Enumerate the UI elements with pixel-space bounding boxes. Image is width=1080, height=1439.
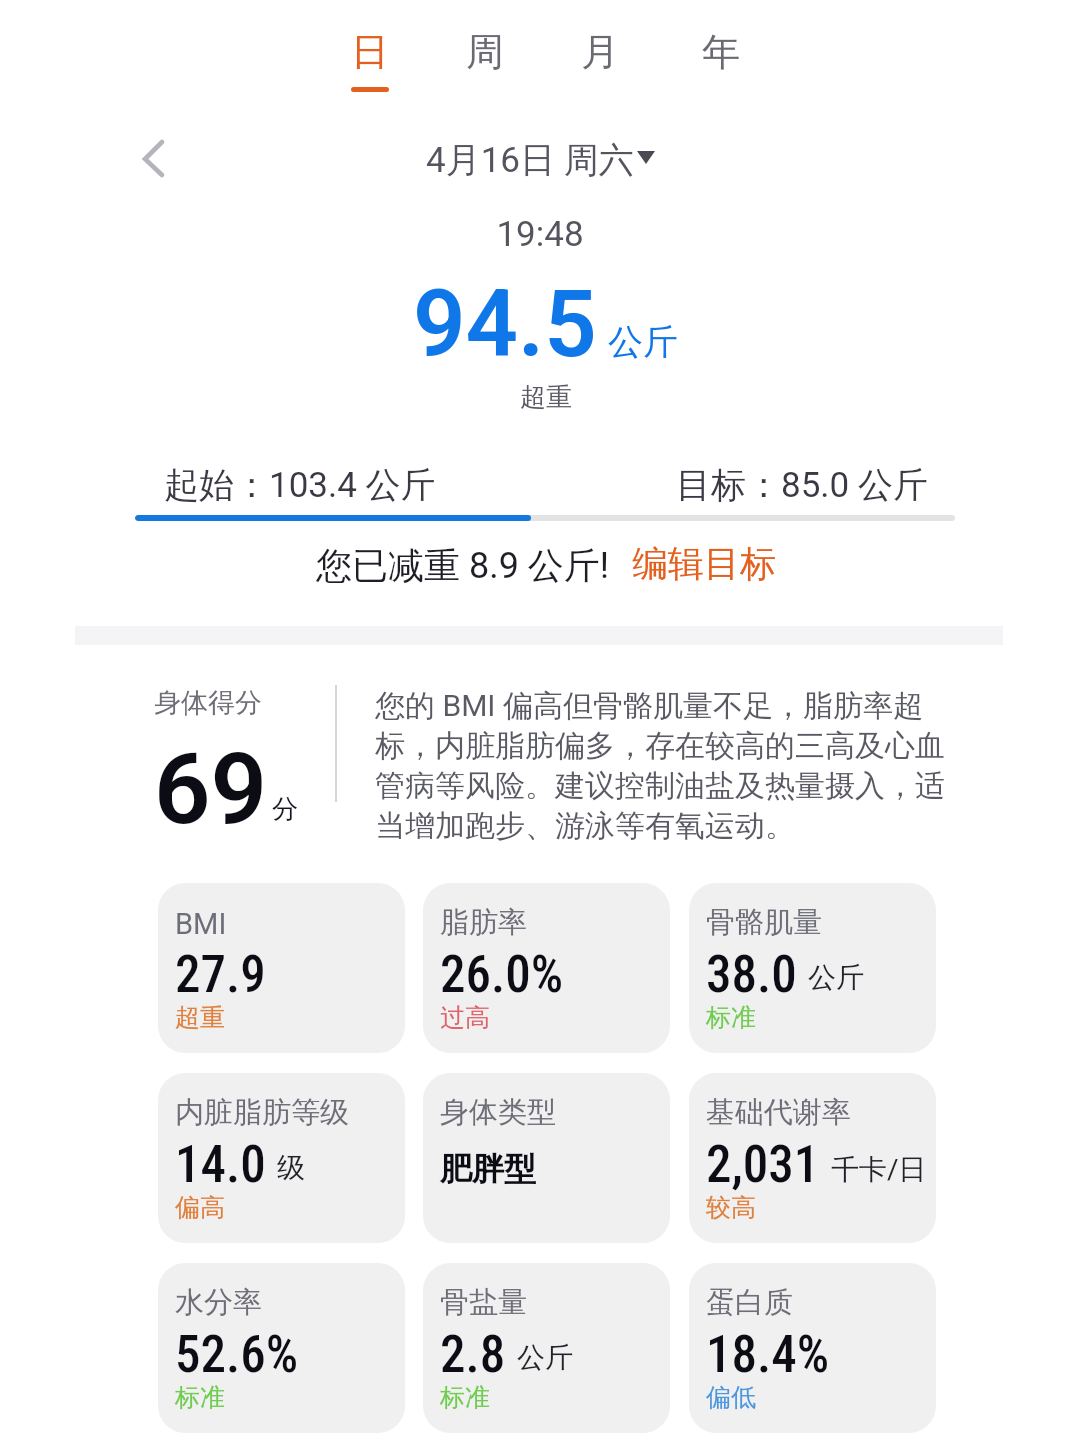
button[interactable]: 骨骼肌量 [689, 883, 936, 1053]
button[interactable]: Back [124, 130, 180, 186]
staticText: 标准 [440, 1382, 490, 1414]
staticText: 分 [272, 794, 298, 826]
staticText: 周 [466, 32, 504, 76]
staticText: 起始：103.4 公斤 [164, 462, 436, 508]
staticText: 目标：85.0 公斤 [676, 462, 928, 508]
staticText: 水分率 [175, 1285, 262, 1321]
staticText: 2.8 [440, 1331, 506, 1383]
staticText: 级 [277, 1152, 305, 1186]
button[interactable]: 年 [675, 32, 767, 116]
staticText: 日 [351, 32, 389, 76]
staticText: 脂肪率 [440, 905, 527, 941]
staticText: 蛋白质 [706, 1285, 793, 1321]
staticText: 27.9 [175, 951, 266, 1003]
staticText: 身体类型 [440, 1095, 556, 1131]
button[interactable]: 身体类型 [423, 1073, 670, 1243]
staticText: 骨骼肌量 [706, 905, 822, 941]
staticText: 18.4% [706, 1331, 830, 1383]
staticText: 肥胖型 [440, 1149, 536, 1191]
staticText: 编辑目标 [632, 543, 776, 587]
staticText: 千卡/日 [831, 1152, 927, 1188]
staticText: 14.0 [175, 1141, 266, 1193]
staticText: 偏低 [706, 1382, 756, 1414]
button[interactable]: BMI [158, 883, 405, 1053]
staticText: 公斤 [517, 1342, 573, 1376]
staticText: 偏高 [175, 1192, 225, 1224]
staticText: 94.5 [413, 272, 597, 378]
staticText: 26.0% [440, 951, 564, 1003]
button[interactable]: 日 [324, 32, 416, 116]
staticText: 身体得分 [154, 687, 262, 721]
staticText: 超重 [175, 1002, 225, 1034]
staticText: 52.6% [175, 1331, 299, 1383]
staticText: 月 [581, 32, 619, 76]
staticText: 标准 [706, 1002, 756, 1034]
staticText: 公斤 [608, 321, 678, 365]
staticText: 您已减重 8.9 公斤! [316, 543, 610, 589]
staticText: 69 [154, 731, 268, 847]
button[interactable]: 4月16日 周六 [426, 137, 655, 183]
button[interactable]: 月 [554, 32, 646, 116]
button[interactable]: 基础代谢率 [689, 1073, 936, 1243]
button[interactable]: 骨盐量 [423, 1263, 670, 1433]
button[interactable]: 蛋白质 [689, 1263, 936, 1433]
button[interactable]: 水分率 [158, 1263, 405, 1433]
staticText: 年 [702, 32, 740, 76]
staticText: 标准 [175, 1382, 225, 1414]
staticText: 内脏脂肪等级 [175, 1095, 349, 1131]
staticText: 38.0 [706, 951, 797, 1003]
button[interactable]: 内脏脂肪等级 [158, 1073, 405, 1243]
staticText: 19:48 [0, 211, 1080, 255]
button[interactable]: 脂肪率 [423, 883, 670, 1053]
staticText: 2,031 [706, 1141, 820, 1193]
button[interactable]: 编辑目标 [632, 543, 776, 587]
staticText: 过高 [440, 1002, 490, 1034]
staticText: BMI [175, 905, 227, 941]
staticText: 较高 [706, 1192, 756, 1224]
staticText: 骨盐量 [440, 1285, 527, 1321]
staticText: 超重 [6, 381, 1080, 415]
staticText: 基础代谢率 [706, 1095, 851, 1131]
staticText: 公斤 [808, 962, 864, 996]
button[interactable]: 周 [439, 32, 531, 116]
staticText: 4月16日 周六 [426, 137, 634, 183]
staticText: 您的 BMI 偏高但骨骼肌量不足，脂肪率超 标，内脏脂肪偏多，存在较高的三高及心… [375, 684, 945, 846]
